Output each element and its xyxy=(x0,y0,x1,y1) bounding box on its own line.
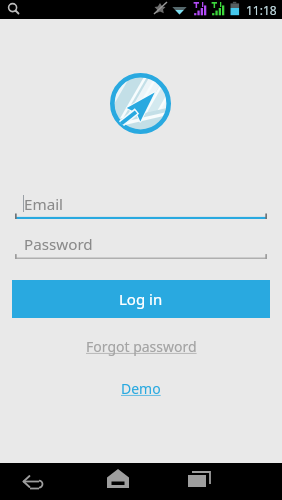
staticText: Email xyxy=(24,194,64,215)
staticText: Log in xyxy=(119,289,163,309)
button[interactable]: Recent apps xyxy=(182,463,216,500)
button[interactable]: Email xyxy=(15,193,267,219)
button[interactable]: Forgot password xyxy=(80,335,203,358)
staticText: 11:18 xyxy=(246,2,277,18)
button[interactable]: Back xyxy=(18,463,52,500)
button[interactable]: Demo xyxy=(115,377,167,400)
button[interactable]: Log in xyxy=(12,280,270,318)
staticText: Demo xyxy=(121,379,161,398)
button[interactable]: Home xyxy=(101,463,135,500)
staticText: Password xyxy=(24,234,93,255)
button[interactable]: Password xyxy=(15,233,267,259)
staticText: Forgot password xyxy=(86,337,197,356)
